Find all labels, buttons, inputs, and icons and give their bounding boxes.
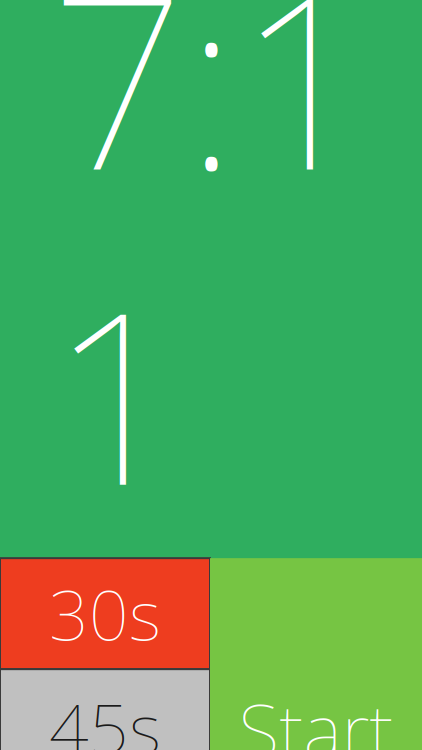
staticText: 7:11 [50, 0, 372, 550]
staticText: 45s [49, 681, 161, 750]
button[interactable]: 30s [0, 558, 210, 669]
staticText: 30s [49, 568, 161, 660]
button[interactable]: Start [210, 558, 422, 750]
staticText: Start [238, 680, 393, 750]
button[interactable]: 45s [0, 669, 210, 750]
